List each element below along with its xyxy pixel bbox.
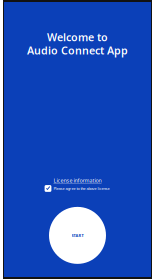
button[interactable]: Please agree to the above license. (45, 185, 110, 192)
button[interactable]: License information (53, 177, 101, 184)
staticText: START (71, 233, 83, 238)
button[interactable]: START (49, 207, 106, 264)
staticText: License information (53, 177, 101, 184)
staticText: Audio Connect App (27, 43, 128, 57)
staticText: Please agree to the above license. (53, 186, 110, 191)
staticText: Welcome to (47, 30, 108, 44)
